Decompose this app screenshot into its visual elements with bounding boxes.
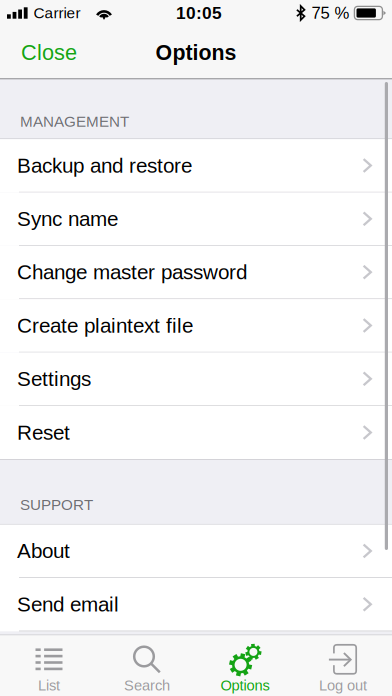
staticText: Change master password xyxy=(17,261,247,284)
button[interactable]: About xyxy=(0,525,392,578)
staticText: Reset xyxy=(17,421,70,444)
staticText: Options xyxy=(155,41,236,64)
staticText: Send email xyxy=(17,593,119,616)
staticText: Search xyxy=(124,677,170,693)
staticText: List xyxy=(38,677,60,693)
staticText: Close xyxy=(21,40,77,65)
button[interactable]: Change master password xyxy=(0,246,392,299)
button[interactable]: Sync name xyxy=(0,192,392,246)
staticText: Backup and restore xyxy=(17,154,192,177)
staticText: MANAGEMENT xyxy=(20,113,129,130)
button[interactable]: Settings xyxy=(0,352,392,406)
button[interactable]: Send email xyxy=(0,578,392,631)
staticText: SUPPORT xyxy=(20,496,93,513)
button[interactable]: Create plaintext file xyxy=(0,299,392,352)
staticText: Log out xyxy=(319,677,367,693)
staticText: Carrier xyxy=(34,4,81,21)
staticText: Settings xyxy=(17,367,91,390)
button[interactable]: List xyxy=(0,634,98,696)
staticText: 75 % xyxy=(311,4,349,22)
staticText: About xyxy=(17,539,70,562)
button[interactable]: Search xyxy=(98,634,196,696)
button[interactable]: Backup and restore xyxy=(0,139,392,192)
button[interactable]: Options xyxy=(196,634,294,696)
staticText: Create plaintext file xyxy=(17,314,193,337)
staticText: Options xyxy=(220,677,269,693)
button[interactable]: Log out xyxy=(294,634,392,696)
button[interactable]: Close xyxy=(12,30,86,74)
button[interactable]: Reset xyxy=(0,406,392,459)
staticText: 10:05 xyxy=(176,3,222,23)
staticText: Sync name xyxy=(17,207,118,230)
